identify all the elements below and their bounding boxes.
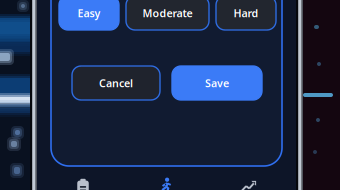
button[interactable]: Log: [41, 175, 124, 190]
staticText: Save: [205, 76, 229, 90]
button[interactable]: Save: [172, 66, 262, 100]
staticText: Cancel: [99, 76, 133, 90]
staticText: Moderate: [142, 6, 192, 20]
button[interactable]: Cancel: [72, 66, 160, 100]
staticText: Easy: [77, 6, 100, 20]
staticText: Hard: [233, 6, 258, 20]
button[interactable]: Progress: [207, 175, 290, 190]
button[interactable]: Hard: [216, 0, 276, 30]
button[interactable]: Easy: [59, 0, 119, 30]
button[interactable]: Workout: [124, 175, 207, 190]
button[interactable]: Moderate: [126, 0, 209, 30]
